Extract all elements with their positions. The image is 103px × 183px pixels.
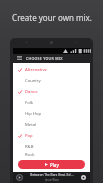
button[interactable]: R&B: [13, 141, 90, 152]
staticText: Pop: [25, 133, 33, 139]
staticText: Metal: [25, 122, 37, 128]
button[interactable]: Rock: [13, 152, 90, 157]
button[interactable]: Between The Bars (feat. Ed …: [23, 173, 80, 182]
button[interactable]: Settings: [80, 174, 87, 181]
staticText: Between The Bars (feat. Ed …: [30, 173, 74, 177]
staticText: Country: [25, 78, 41, 84]
staticText: Play: [50, 162, 59, 168]
staticText: R&B: [25, 144, 34, 150]
staticText: Alternative: [25, 67, 48, 73]
staticText: CHOOSE YOUR MIX: [26, 56, 63, 61]
button[interactable]: Metal: [13, 119, 90, 130]
button[interactable]: Play: [18, 160, 85, 169]
button[interactable]: Hip Hop: [13, 108, 90, 119]
staticText: Rock: [25, 152, 35, 157]
staticText: Dance: [25, 89, 38, 95]
button[interactable]: Dance: [13, 86, 90, 97]
staticText: Create your own mix.: [12, 12, 92, 23]
button[interactable]: Pop: [13, 130, 90, 141]
button[interactable]: Alternative: [13, 64, 90, 75]
button[interactable]: Country: [13, 75, 90, 86]
button[interactable]: Open navigation menu: [16, 55, 23, 62]
staticText: Jessie Ware: [45, 178, 59, 182]
staticText: Folk: [25, 100, 34, 106]
button[interactable]: Play: [16, 174, 23, 181]
button[interactable]: Folk: [13, 97, 90, 108]
staticText: Hip Hop: [25, 111, 42, 117]
